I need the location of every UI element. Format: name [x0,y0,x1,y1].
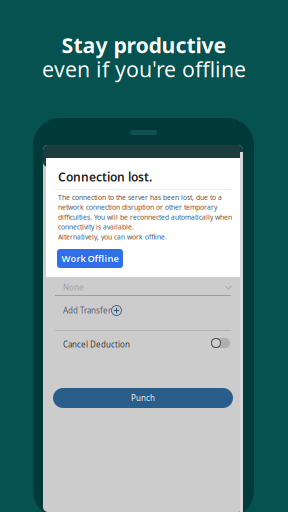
button[interactable]: Cancel Deduction [43,333,243,359]
staticText: Punch [131,393,155,403]
button[interactable]: Add Transfer [43,299,243,327]
staticText: Work Offline [61,252,118,265]
staticText: connectivity is available. [58,223,134,231]
staticText: network connection disruption or other t… [58,203,217,212]
button[interactable]: Punch [53,388,233,408]
staticText: Alternatively, you can work offline. [58,232,167,241]
staticText: Stay productive [61,31,226,59]
staticText: even if you're offline [42,55,246,83]
staticText: Add Transfer [63,305,111,316]
staticText: None [63,282,84,293]
button[interactable]: Work Offline [57,249,123,268]
button[interactable]: None [43,277,243,299]
staticText: Connection lost. [58,169,152,185]
staticText: The connection to the server has been lo… [58,193,222,202]
staticText: difficulties. You will be reconnected au… [58,213,232,222]
staticText: Cancel Deduction [63,339,130,350]
